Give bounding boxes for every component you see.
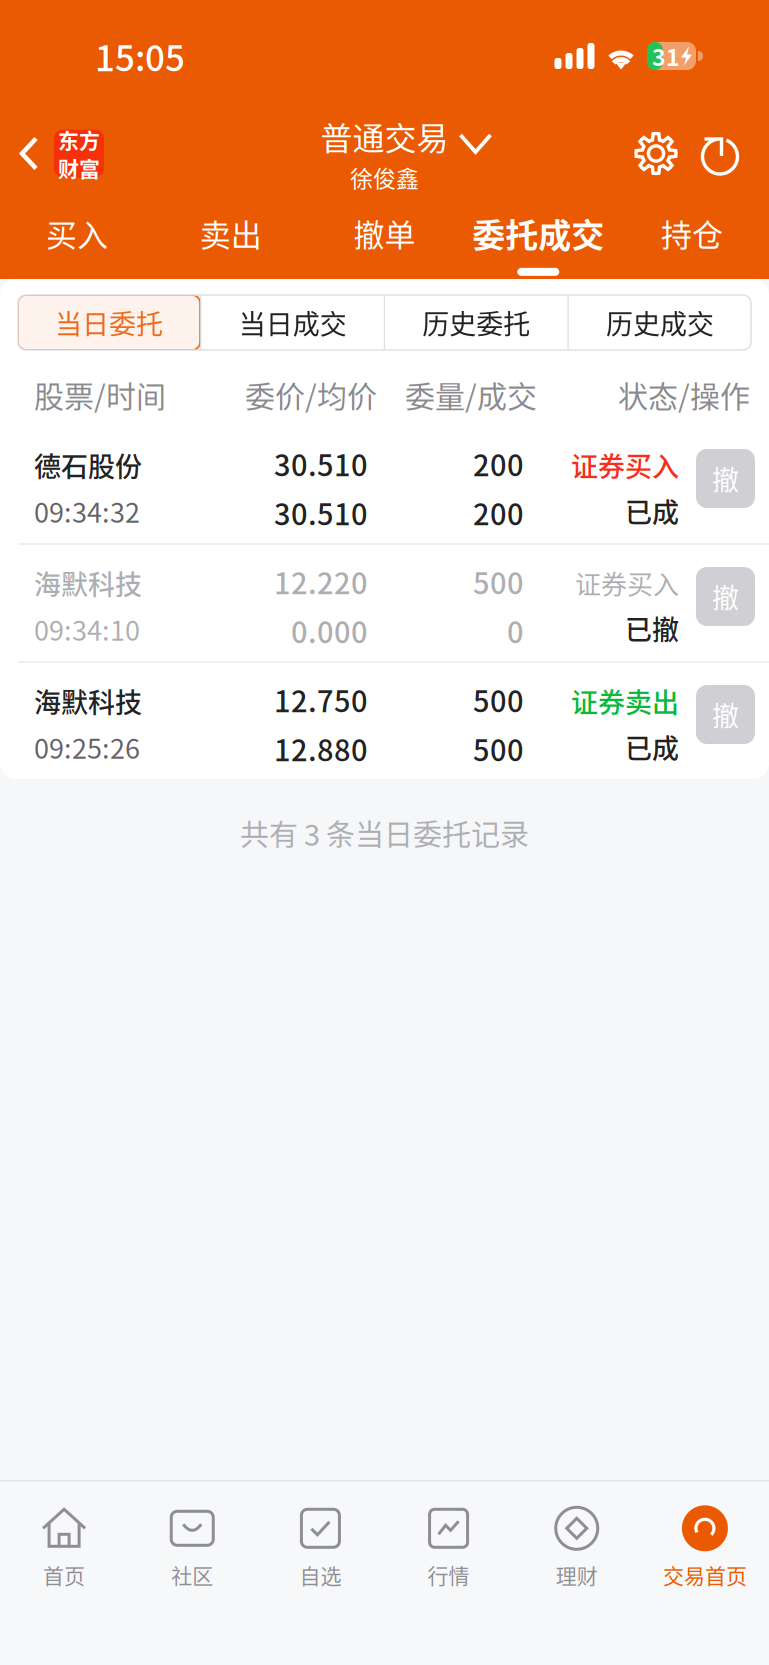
button[interactable]: 当日委托 bbox=[18, 295, 200, 350]
staticText: 社区 bbox=[171, 1559, 213, 1590]
button[interactable]: 设置 bbox=[627, 124, 685, 182]
staticText: 委托成交 bbox=[472, 209, 604, 257]
staticText: 已成 bbox=[625, 491, 679, 531]
staticText: 行情 bbox=[428, 1559, 470, 1590]
button[interactable]: 刷新 bbox=[691, 124, 749, 182]
staticText: 交易首页 bbox=[663, 1559, 747, 1590]
button[interactable]: 理财 bbox=[513, 1495, 641, 1590]
staticText: 状态/操作 bbox=[618, 373, 750, 416]
staticText: 30.510 bbox=[274, 491, 368, 533]
button[interactable]: 撤 bbox=[696, 685, 755, 744]
staticText: 当日委托 bbox=[55, 303, 163, 342]
staticText: 09:34:10 bbox=[34, 609, 140, 649]
staticText: 买入 bbox=[46, 211, 108, 255]
staticText: 持仓 bbox=[661, 211, 723, 255]
button[interactable]: 返回 bbox=[0, 119, 104, 187]
button[interactable]: 交易首页 bbox=[641, 1495, 769, 1590]
button[interactable]: 历史成交 bbox=[569, 295, 751, 350]
staticText: 31 bbox=[652, 39, 680, 73]
button[interactable]: 行情 bbox=[384, 1495, 513, 1590]
staticText: 海默科技 bbox=[34, 563, 142, 602]
staticText: 12.880 bbox=[274, 727, 368, 769]
staticText: 12.750 bbox=[274, 678, 368, 720]
staticText: 09:25:26 bbox=[34, 727, 140, 767]
button[interactable]: 撤 bbox=[696, 567, 755, 626]
staticText: 普通交易 bbox=[320, 113, 448, 159]
button[interactable]: 卖出 bbox=[154, 206, 308, 274]
button[interactable]: 当日成交 bbox=[202, 295, 384, 350]
staticText: 徐俊鑫 bbox=[350, 160, 419, 194]
staticText: 卖出 bbox=[200, 211, 262, 255]
staticText: 09:34:32 bbox=[34, 491, 140, 531]
staticText: 15:05 bbox=[95, 31, 185, 81]
staticText: 12.220 bbox=[274, 560, 368, 602]
staticText: 历史成交 bbox=[606, 303, 714, 342]
button[interactable]: 委托成交 bbox=[461, 204, 615, 276]
button[interactable]: 持仓 bbox=[615, 206, 769, 274]
staticText: 撤单 bbox=[353, 211, 415, 255]
staticText: 0.000 bbox=[291, 609, 368, 651]
button[interactable]: 撤单 bbox=[308, 206, 461, 274]
staticText: 撤 bbox=[712, 577, 739, 616]
button[interactable]: 首页 bbox=[0, 1495, 128, 1590]
staticText: 首页 bbox=[43, 1559, 85, 1590]
staticText: 证券买入 bbox=[571, 445, 679, 484]
staticText: 500 bbox=[473, 560, 524, 602]
staticText: 0 bbox=[507, 609, 524, 651]
staticText: 海默科技 bbox=[34, 681, 142, 720]
staticText: 撤 bbox=[712, 459, 739, 498]
staticText: 财富 bbox=[58, 152, 100, 183]
button[interactable]: 撤 bbox=[696, 449, 755, 508]
staticText: 已撤 bbox=[625, 609, 679, 648]
staticText: 500 bbox=[473, 727, 524, 769]
staticText: 已成 bbox=[625, 727, 679, 767]
staticText: 撤 bbox=[712, 695, 739, 734]
button[interactable]: 社区 bbox=[128, 1495, 256, 1590]
button[interactable]: 历史委托 bbox=[385, 295, 567, 350]
staticText: 委量/成交 bbox=[405, 373, 537, 416]
button[interactable]: 自选 bbox=[256, 1495, 384, 1590]
staticText: 200 bbox=[473, 442, 524, 484]
staticText: 30.510 bbox=[274, 442, 368, 484]
staticText: 委价/均价 bbox=[245, 373, 377, 416]
staticText: 500 bbox=[473, 678, 524, 720]
staticText: 当日成交 bbox=[239, 303, 347, 342]
staticText: 历史委托 bbox=[422, 303, 530, 342]
staticText: 东方 bbox=[58, 124, 100, 154]
staticText: 自选 bbox=[299, 1559, 341, 1590]
staticText: 证券卖出 bbox=[571, 681, 679, 720]
staticText: 股票/时间 bbox=[34, 373, 166, 416]
staticText: 共有 3 条当日委托记录 bbox=[240, 812, 529, 854]
button[interactable]: 普通交易 bbox=[276, 113, 492, 194]
button[interactable]: 买入 bbox=[0, 206, 154, 274]
staticText: 200 bbox=[473, 491, 524, 533]
staticText: 证券买入 bbox=[575, 564, 679, 602]
staticText: 德石股份 bbox=[34, 445, 142, 484]
staticText: 理财 bbox=[556, 1559, 598, 1590]
